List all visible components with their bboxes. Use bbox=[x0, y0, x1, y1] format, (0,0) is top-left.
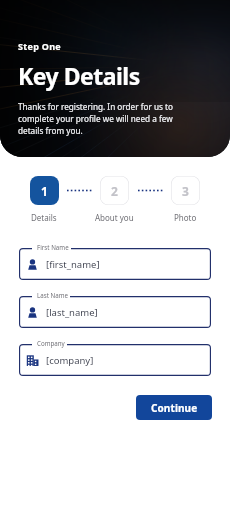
staticText: Company bbox=[37, 339, 65, 347]
staticText: Last Name bbox=[37, 291, 68, 299]
staticText: Continue bbox=[151, 401, 198, 415]
staticText: 2 bbox=[111, 183, 118, 199]
staticText: Thanks for registering. In order for us … bbox=[18, 101, 198, 136]
staticText: First Name bbox=[37, 243, 69, 251]
button[interactable]: [last_name] bbox=[19, 296, 211, 328]
button[interactable]: [company] bbox=[19, 344, 211, 376]
staticText: 1 bbox=[41, 183, 48, 199]
staticText: Details bbox=[31, 212, 57, 223]
staticText: [first_name] bbox=[46, 258, 100, 271]
staticText: Key Details bbox=[18, 60, 140, 91]
button[interactable]: Continue bbox=[136, 395, 212, 420]
button[interactable]: 2 bbox=[92, 176, 137, 223]
button[interactable]: 1 bbox=[22, 176, 66, 223]
button[interactable]: [first_name] bbox=[19, 248, 211, 280]
staticText: [company] bbox=[46, 354, 94, 367]
staticText: About you bbox=[95, 212, 134, 223]
button[interactable]: 3 bbox=[163, 176, 208, 223]
staticText: Photo bbox=[174, 212, 197, 223]
staticText: Step One bbox=[18, 40, 62, 52]
staticText: 3 bbox=[182, 183, 189, 199]
staticText: [last_name] bbox=[46, 306, 98, 319]
